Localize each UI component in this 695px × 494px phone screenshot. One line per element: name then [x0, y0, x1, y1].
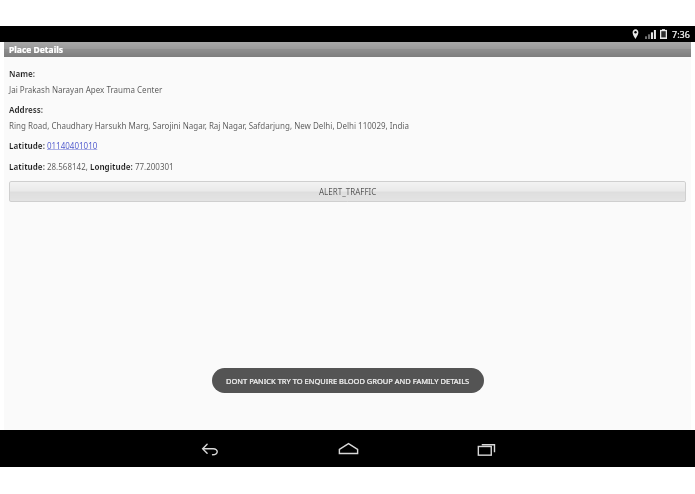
staticText: Jai Prakash Narayan Apex Trauma Center — [9, 84, 163, 95]
staticText: Latitude: 28.568142, Longitude: 77.20030… — [9, 161, 174, 172]
button[interactable]: ALERT_TRAFFIC — [9, 181, 686, 202]
staticText: Latitude: 01140401010 — [9, 140, 98, 151]
staticText: ALERT_TRAFFIC — [319, 186, 377, 197]
staticText: Address: — [9, 104, 44, 115]
button[interactable]: Back — [165, 430, 255, 467]
button[interactable]: Home — [303, 430, 393, 467]
staticText: Ring Road, Chaudhary Harsukh Marg, Saroj… — [9, 120, 409, 131]
staticText: DONT PANICK TRY TO ENQUIRE BLOOD GROUP A… — [226, 376, 470, 386]
button[interactable]: Recent apps — [441, 430, 531, 467]
staticText: 7:36 — [672, 28, 690, 40]
staticText: Name: — [9, 68, 36, 79]
button[interactable]: Latitude: 01140401010 — [9, 140, 98, 151]
staticText: Place Details — [9, 44, 63, 56]
